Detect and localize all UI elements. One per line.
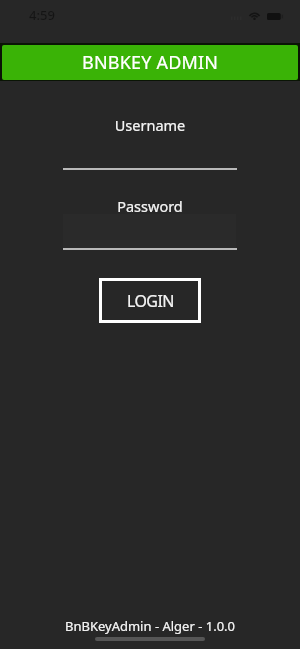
other: Wi-Fi: [248, 11, 261, 20]
staticText: Username: [0, 115, 300, 135]
button[interactable]: [63, 135, 237, 170]
other: Battery: [267, 13, 283, 20]
staticText: LOGIN: [127, 290, 174, 312]
button[interactable]: LOGIN: [99, 278, 201, 323]
staticText: Password: [0, 196, 300, 216]
staticText: 4:59: [29, 6, 55, 24]
button[interactable]: [63, 214, 237, 250]
staticText: BNBKEY ADMIN: [82, 50, 219, 75]
button[interactable]: BNBKEY ADMIN: [2, 45, 298, 80]
staticText: BnBKeyAdmin - Alger - 1.0.0: [0, 617, 300, 635]
